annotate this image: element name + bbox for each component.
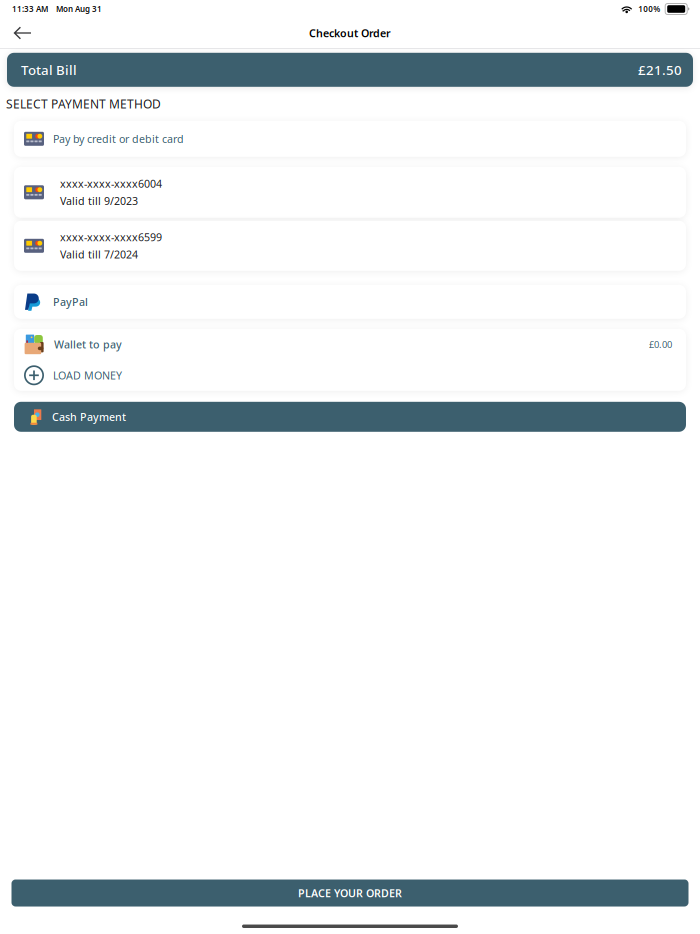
staticText: 11:33 AM — [12, 4, 48, 14]
staticText: Valid till 7/2024 — [60, 247, 138, 261]
staticText: PayPal — [53, 295, 88, 309]
staticText: £21.50 — [638, 61, 682, 79]
button[interactable]: Back — [0, 18, 51, 48]
staticText: LOAD MONEY — [53, 368, 122, 382]
staticText: xxxx-xxxx-xxxx6599 — [60, 230, 162, 244]
staticText: £0.00 — [649, 338, 672, 350]
staticText: Pay by credit or debit card — [53, 132, 184, 146]
button[interactable]: PayPal — [14, 285, 686, 319]
staticText: Cash Payment — [52, 410, 126, 424]
staticText: 100% — [638, 4, 660, 14]
button[interactable]: PLACE YOUR ORDER — [11, 879, 688, 906]
staticText: Valid till 9/2023 — [60, 194, 138, 208]
button[interactable]: Wallet to pay — [14, 329, 686, 360]
staticText: Wallet to pay — [54, 337, 122, 351]
staticText: Checkout Order — [309, 26, 391, 40]
button[interactable]: xxxx-xxxx-xxxx6599 — [14, 221, 686, 271]
button[interactable]: Pay by credit or debit card — [14, 121, 686, 157]
staticText: Total Bill — [21, 61, 77, 79]
staticText: PLACE YOUR ORDER — [298, 886, 402, 900]
button[interactable]: xxxx-xxxx-xxxx6004 — [14, 167, 686, 218]
staticText: xxxx-xxxx-xxxx6004 — [60, 177, 162, 191]
staticText: Mon Aug 31 — [56, 4, 102, 14]
staticText: SELECT PAYMENT METHOD — [6, 96, 161, 112]
button[interactable]: LOAD MONEY — [14, 360, 686, 391]
button[interactable]: Cash Payment — [14, 402, 686, 432]
